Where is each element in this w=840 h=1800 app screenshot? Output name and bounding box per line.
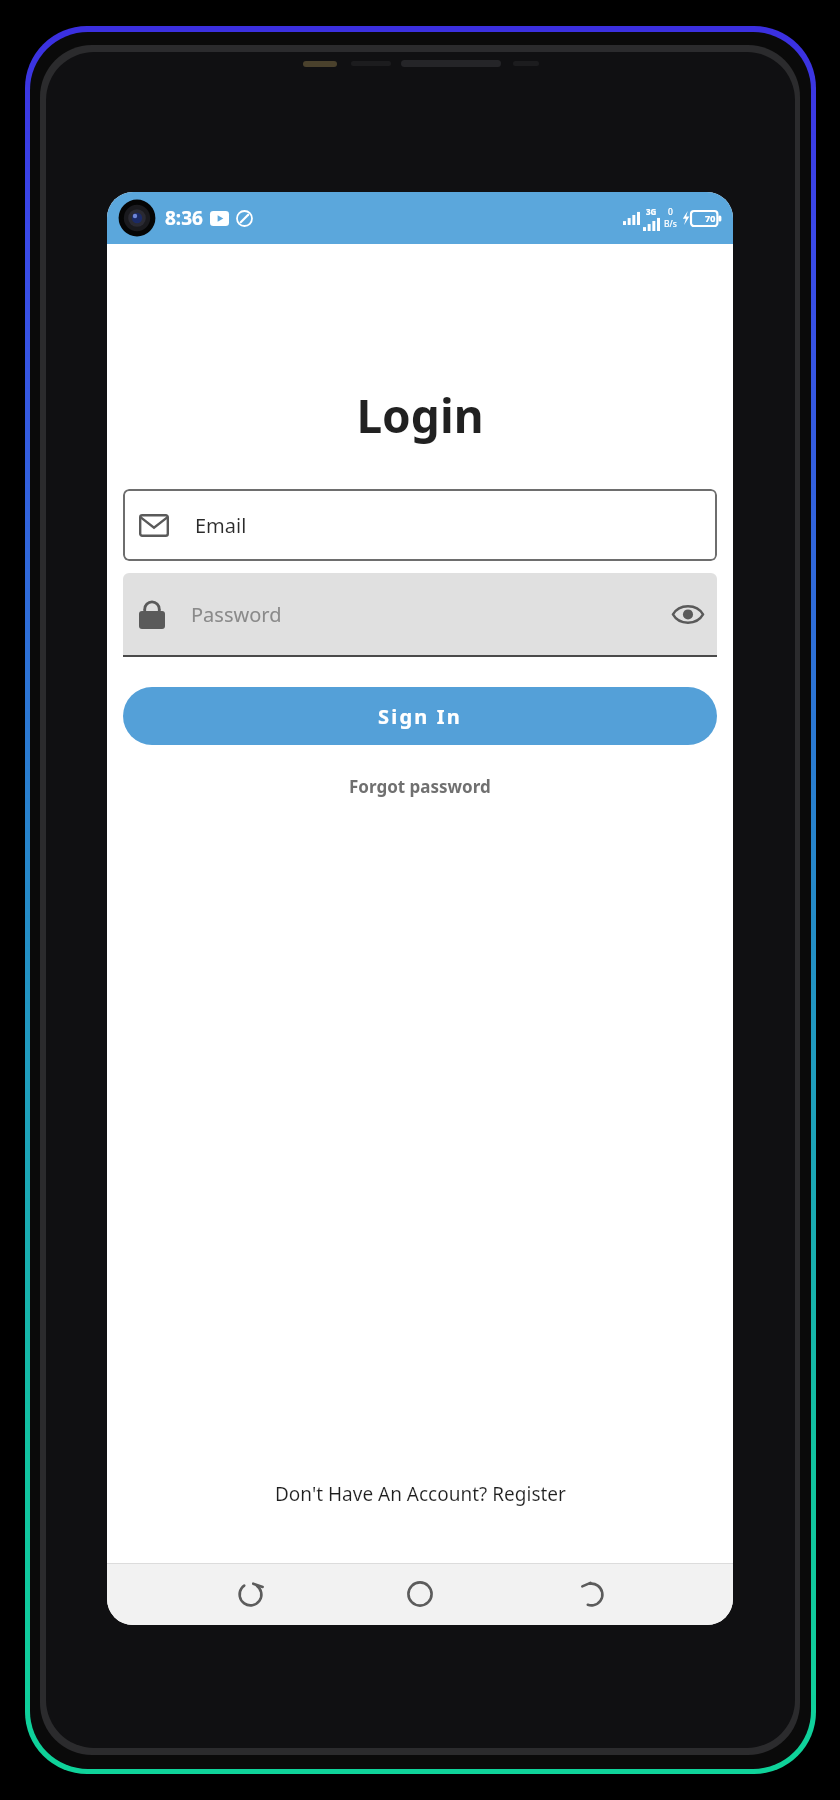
button[interactable]: Forgot password bbox=[339, 771, 501, 802]
staticText: 3G bbox=[646, 206, 657, 217]
staticText: 0 bbox=[668, 206, 673, 218]
button[interactable]: Email bbox=[123, 489, 717, 561]
staticText: Don't Have An Account? Register bbox=[275, 1481, 566, 1507]
staticText: Email bbox=[195, 512, 247, 539]
staticText: 70 bbox=[705, 212, 716, 224]
button[interactable]: Recent apps bbox=[222, 1566, 278, 1622]
staticText: Sign In bbox=[378, 703, 463, 730]
button[interactable]: Back bbox=[563, 1566, 619, 1622]
staticText: 8:36 bbox=[165, 205, 203, 231]
button[interactable]: Home bbox=[392, 1566, 448, 1622]
staticText: Login bbox=[356, 384, 484, 447]
button[interactable]: Sign In bbox=[123, 687, 717, 745]
button[interactable]: Don't Have An Account? Register bbox=[265, 1475, 576, 1513]
button[interactable]: Show password bbox=[665, 591, 711, 637]
button[interactable]: Password bbox=[123, 573, 717, 655]
staticText: Password bbox=[191, 601, 282, 628]
staticText: B/s bbox=[664, 218, 677, 230]
staticText: Forgot password bbox=[349, 775, 491, 798]
